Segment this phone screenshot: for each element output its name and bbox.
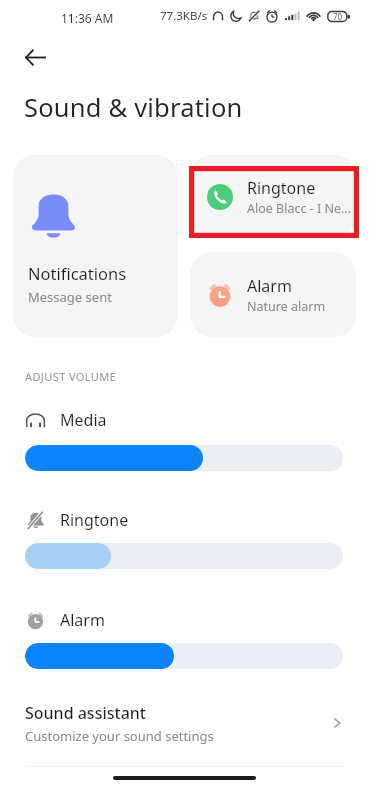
staticText: Alarm xyxy=(247,275,292,297)
staticText: 70 xyxy=(333,11,343,22)
button[interactable]: Alarm xyxy=(190,252,356,337)
button[interactable]: Back xyxy=(19,41,51,73)
staticText: Customize your sound settings xyxy=(25,727,214,745)
button[interactable]: Sound assistant xyxy=(0,695,369,751)
button[interactable]: Ringtone volume xyxy=(25,543,343,569)
staticText: 11:36 AM xyxy=(61,10,114,26)
staticText: Ringtone xyxy=(247,177,316,199)
staticText: Sound assistant xyxy=(25,702,146,724)
staticText: Sound & vibration xyxy=(24,90,243,125)
staticText: Message sent xyxy=(28,288,112,306)
button[interactable]: Ringtone xyxy=(190,155,356,238)
staticText: ADJUST VOLUME xyxy=(25,369,117,384)
staticText: Nature alarm xyxy=(247,298,326,315)
button[interactable]: Alarm volume xyxy=(25,643,343,669)
staticText: Media xyxy=(60,409,107,431)
button[interactable]: Media volume xyxy=(25,445,343,471)
staticText: 77.3KB/s xyxy=(160,8,208,24)
staticText: Ringtone xyxy=(60,509,129,531)
button[interactable]: Notifications xyxy=(13,155,178,337)
staticText: Alarm xyxy=(60,609,105,631)
staticText: Aloe Blacc - I Ne... xyxy=(247,200,352,217)
staticText: Notifications xyxy=(28,262,127,284)
